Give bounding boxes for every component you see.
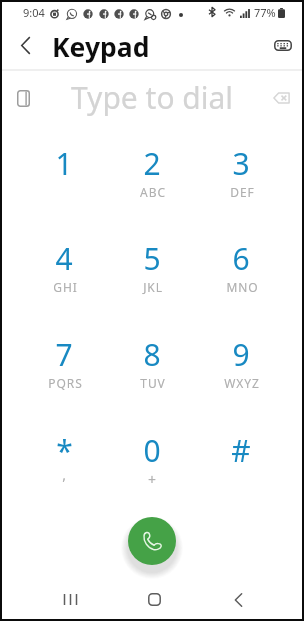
staticText: MNO <box>226 279 259 295</box>
staticText: Keypad <box>52 29 150 65</box>
staticText: ABC <box>140 184 166 200</box>
staticText: 3 <box>232 143 250 176</box>
button[interactable]: 9 <box>197 334 285 429</box>
staticText: GHI <box>53 279 78 295</box>
button[interactable]: Recents <box>42 580 98 619</box>
button[interactable]: Navigate up <box>3 24 47 67</box>
button[interactable]: # <box>197 430 285 525</box>
staticText: 6 <box>232 238 250 271</box>
staticText: 5 <box>143 238 161 271</box>
button[interactable]: 5 <box>108 238 196 333</box>
button[interactable]: * <box>20 430 108 525</box>
button[interactable]: Contacts <box>1 70 45 126</box>
button[interactable]: 0 <box>108 430 196 525</box>
staticText: 4 <box>55 238 73 271</box>
staticText: , <box>62 465 67 484</box>
staticText: + <box>148 470 157 489</box>
button[interactable]: 2 <box>108 143 196 238</box>
staticText: 8 <box>143 334 161 367</box>
staticText: * <box>56 430 73 463</box>
button[interactable]: Back <box>210 580 266 619</box>
button[interactable]: Home <box>126 580 182 619</box>
button[interactable]: 7 <box>20 334 108 429</box>
button[interactable]: Call <box>128 517 176 565</box>
button[interactable]: 3 <box>197 143 285 238</box>
staticText: WXYZ <box>224 375 260 391</box>
button[interactable]: Backspace <box>259 70 303 126</box>
staticText: 0 <box>143 430 161 463</box>
staticText: # <box>231 430 251 463</box>
button[interactable]: 1 <box>20 143 108 238</box>
button[interactable]: 6 <box>197 238 285 333</box>
staticText: 7 <box>55 334 73 367</box>
button[interactable]: Keyboard <box>261 24 304 67</box>
staticText: 9 <box>232 334 250 367</box>
staticText: DEF <box>230 184 255 200</box>
staticText: TUV <box>140 375 166 391</box>
staticText: 2 <box>143 143 161 176</box>
staticText: Type to dial <box>71 77 234 118</box>
staticText: PQRS <box>48 375 83 391</box>
staticText: 1 <box>55 143 73 176</box>
staticText: 77% <box>254 5 276 20</box>
button[interactable]: 4 <box>20 238 108 333</box>
staticText: JKL <box>143 279 163 295</box>
staticText: 9:04 <box>23 5 45 20</box>
button[interactable]: 8 <box>108 334 196 429</box>
